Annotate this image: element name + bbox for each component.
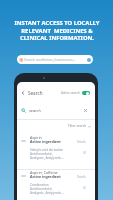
button[interactable]: Active search toggle <box>82 91 90 95</box>
staticText: Active search <box>61 91 80 95</box>
button[interactable]: search <box>17 106 95 115</box>
staticText: Combination Antithrombotic, Analgesic, A… <box>30 183 64 195</box>
staticText: Search <box>28 90 43 96</box>
staticText: search <box>29 108 41 113</box>
button[interactable]: Aspirin Active ingredient <box>17 135 95 169</box>
button[interactable]: Search medicines, businesses... <box>17 55 93 64</box>
staticText: Details <box>77 140 86 144</box>
staticText: Search medicines, businesses... <box>24 57 76 62</box>
staticText: Salicylic acid derivative Antithrombotic… <box>30 148 64 160</box>
button[interactable]: Filter search <box>68 124 91 128</box>
staticText: Aspirin; Caffeine Active ingredient <box>30 170 61 179</box>
button[interactable]: Search <box>87 58 91 62</box>
button[interactable]: Clear <box>84 109 87 112</box>
button[interactable]: Back <box>19 89 27 97</box>
staticText: INSTANT ACCESS TO LOCALLY RELEVANT MEDIC… <box>14 19 100 42</box>
staticText: Aspirin Active ingredient <box>30 135 61 144</box>
staticText: Details <box>77 175 86 179</box>
staticText: Filter search <box>68 124 87 128</box>
button[interactable]: Aspirin; Caffeine Active ingredient <box>17 170 95 200</box>
